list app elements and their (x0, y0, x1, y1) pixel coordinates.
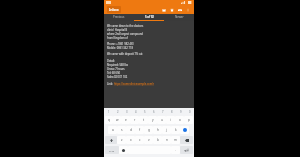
staticText: n (166, 138, 168, 142)
button[interactable]: 3 (122, 108, 131, 115)
staticText: Gross: 7 hours (107, 67, 125, 71)
staticText: a (112, 128, 114, 132)
button[interactable]: Mark unread (176, 6, 184, 14)
button[interactable]: Previous (104, 14, 134, 20)
button[interactable]: More options (184, 6, 192, 14)
button[interactable]: w (113, 116, 121, 124)
button[interactable]: c (135, 136, 144, 144)
staticText: We came down to the doctors (107, 24, 144, 28)
staticText: i (170, 118, 171, 122)
staticText: Mobile: 0861 342 718 (107, 46, 133, 50)
staticText: t (143, 118, 145, 122)
staticText: Newer (175, 15, 184, 19)
staticText: 2 (117, 110, 119, 114)
staticText: where 2nd largest compound (107, 32, 143, 36)
staticText: w (116, 118, 119, 122)
staticText: e (125, 118, 127, 122)
button[interactable]: j (162, 126, 171, 134)
button[interactable]: 5 of 92 (134, 14, 164, 20)
button[interactable]: m (171, 136, 180, 144)
staticText: 0 (189, 110, 191, 114)
button[interactable]: o (175, 116, 184, 124)
button[interactable]: n (162, 136, 171, 144)
staticText: u (161, 118, 163, 122)
staticText: 7 (162, 110, 164, 114)
button[interactable]: 7 (158, 108, 167, 115)
staticText: Inbox (109, 7, 119, 12)
staticText: z (121, 138, 123, 142)
staticText: m (174, 138, 177, 142)
button[interactable]: z (117, 136, 126, 144)
button[interactable]: Newer (164, 14, 194, 20)
staticText: ?123 (109, 149, 115, 152)
staticText: s (121, 128, 123, 132)
button[interactable]: 6 (149, 108, 158, 115)
button[interactable]: Inbox (107, 6, 121, 13)
button[interactable]: t (139, 116, 148, 124)
staticText: from Kingdom of (107, 36, 128, 40)
staticText: v (148, 138, 150, 142)
button[interactable]: y (148, 116, 157, 124)
button[interactable]: 5 (140, 108, 149, 115)
staticText: o (179, 118, 181, 122)
staticText: . (175, 148, 176, 152)
button[interactable]: r (130, 116, 139, 124)
button[interactable]: https://someclinicexample.com/r (114, 82, 155, 86)
button[interactable]: q (105, 116, 113, 124)
staticText: 4 (135, 110, 137, 114)
staticText: 1 (108, 110, 110, 114)
button[interactable]: 4 (131, 108, 140, 115)
button[interactable]: Archive (160, 6, 168, 14)
button[interactable]: d (126, 126, 135, 134)
staticText: 5 of 92 (145, 15, 154, 19)
staticText: https://someclinicexample.com/r (114, 82, 155, 86)
staticText: k (175, 128, 177, 132)
button[interactable]: Emoji (119, 146, 128, 154)
button[interactable]: u (157, 116, 166, 124)
button[interactable]: Backspace (180, 136, 193, 144)
button[interactable]: 9 (176, 108, 185, 115)
staticText: q (108, 118, 110, 122)
button[interactable]: Shift (105, 136, 117, 144)
button[interactable]: p (184, 116, 193, 124)
button[interactable]: Enter (180, 146, 193, 154)
staticText: Tel: 68 694 (107, 71, 120, 75)
staticText: Link: (107, 82, 114, 86)
staticText: Required: 548 lbs (107, 63, 129, 67)
button[interactable]: a (108, 126, 117, 134)
staticText: r (134, 118, 136, 122)
staticText: p (188, 118, 190, 122)
button[interactable]: ?123 (105, 146, 119, 154)
button[interactable]: Delete (168, 6, 176, 14)
button[interactable]: g (144, 126, 153, 134)
staticText: b (157, 138, 159, 142)
staticText: x (130, 138, 132, 142)
button[interactable]: x (126, 136, 135, 144)
staticText: 9 (180, 110, 182, 114)
button[interactable]: i (166, 116, 175, 124)
staticText: 5 (144, 110, 146, 114)
button[interactable]: s (117, 126, 126, 134)
button[interactable]: 8 (167, 108, 176, 115)
button[interactable]: k (171, 126, 180, 134)
staticText: 6 (153, 110, 155, 114)
button[interactable]: e (121, 116, 130, 124)
staticText: 3 (126, 110, 128, 114)
staticText: c (139, 138, 141, 142)
staticText: Phone: +1861 982 461 (107, 42, 134, 46)
button[interactable]: 2 (113, 108, 122, 115)
staticText: 8 (171, 110, 173, 114)
button[interactable]: f (135, 126, 144, 134)
staticText: h (157, 128, 159, 132)
staticText: f (139, 128, 141, 132)
button[interactable]: l (180, 126, 189, 134)
staticText: We came with deposit 7% cut (107, 52, 143, 56)
staticText: clinic/ Hospital B (107, 28, 128, 32)
button[interactable]: 1 (104, 108, 113, 115)
button[interactable]: b (153, 136, 162, 144)
button[interactable]: v (144, 136, 153, 144)
button[interactable]: h (153, 126, 162, 134)
button[interactable]: 0 (185, 108, 194, 115)
